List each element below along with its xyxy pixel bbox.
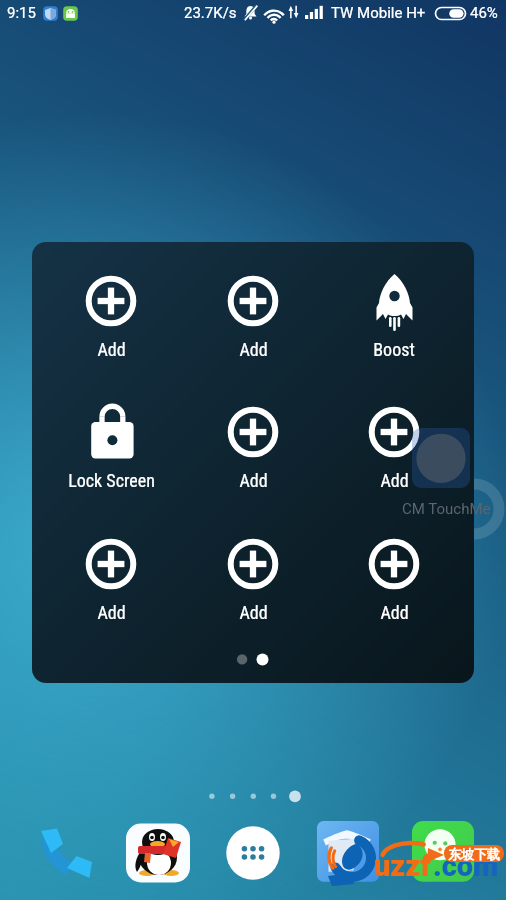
button[interactable]: Browser <box>314 819 380 885</box>
staticText: 23.7K/s <box>184 4 237 22</box>
button[interactable]: Lock Screen <box>49 402 173 494</box>
button[interactable]: WeChat <box>409 819 475 885</box>
staticText: Lock Screen <box>68 470 155 491</box>
staticText: Add <box>97 602 126 623</box>
staticText: 46% <box>470 4 498 22</box>
button[interactable]: All apps <box>220 820 286 886</box>
staticText: Add <box>239 339 268 360</box>
staticText: Boost <box>373 339 415 360</box>
staticText: uzzf <box>374 849 431 883</box>
button[interactable]: CM TouchMe <box>412 428 470 488</box>
button[interactable]: Add <box>49 271 173 363</box>
button[interactable]: Add <box>191 534 315 626</box>
button[interactable]: Add <box>332 534 456 626</box>
staticText: Add <box>239 602 268 623</box>
staticText: 东坡下载 <box>448 846 500 862</box>
button[interactable]: Add <box>191 271 315 363</box>
staticText: TW Mobile H+ <box>331 4 426 22</box>
button[interactable]: Boost <box>332 271 456 363</box>
staticText: Add <box>239 470 268 491</box>
staticText: 9:15 <box>7 4 36 22</box>
staticText: .com <box>433 849 499 883</box>
staticText: Add <box>380 470 409 491</box>
staticText: Add <box>97 339 126 360</box>
button[interactable]: Add <box>49 534 173 626</box>
button[interactable]: Phone <box>32 820 98 886</box>
staticText: CM TouchMe <box>402 500 491 518</box>
button[interactable]: Add <box>332 402 456 494</box>
button[interactable]: Add <box>191 402 315 494</box>
staticText: Add <box>380 602 409 623</box>
button[interactable]: QQ <box>125 820 191 886</box>
